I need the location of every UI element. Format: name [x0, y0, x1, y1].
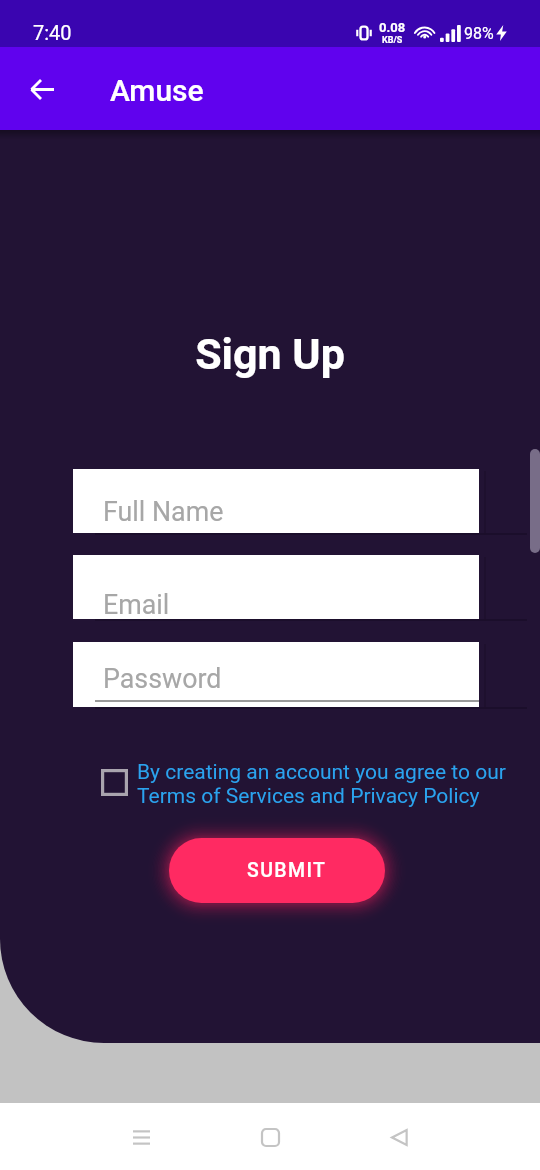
staticText: By creating an account you agree to our … [137, 760, 517, 808]
staticText: Sign Up [0, 329, 540, 379]
staticText: 0.08 [379, 20, 406, 35]
button[interactable]: SUBMIT [169, 838, 385, 903]
button[interactable]: By creating an account you agree to our … [97, 760, 517, 808]
button[interactable]: Recent apps [117, 1113, 165, 1161]
button[interactable]: Back [14, 61, 70, 117]
staticText: KB/S [382, 35, 403, 46]
button[interactable]: Back [375, 1113, 423, 1161]
staticText: SUBMIT [247, 859, 327, 882]
staticText: 98% [464, 24, 494, 43]
button[interactable]: Email [73, 555, 479, 619]
button[interactable]: Password [73, 642, 479, 707]
staticText: 7:40 [33, 21, 72, 44]
staticText: Amuse [110, 73, 204, 108]
staticText: Full Name [103, 496, 224, 527]
button[interactable]: Home [246, 1113, 294, 1161]
staticText: Password [103, 663, 222, 694]
staticText: Email [103, 589, 170, 620]
button[interactable]: Full Name [73, 469, 479, 533]
